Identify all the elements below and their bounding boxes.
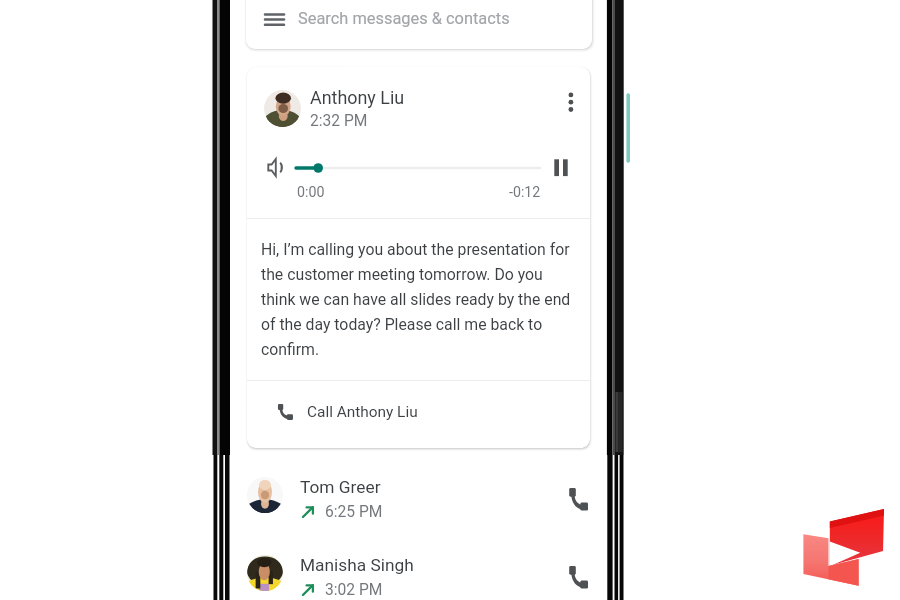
staticText: Hi, I’m calling you about the presentati… — [261, 240, 571, 359]
staticText: Search messages & contacts — [298, 9, 510, 28]
staticText: Anthony Liu — [310, 87, 405, 108]
staticText: Call Anthony Liu — [307, 403, 418, 421]
button[interactable]: Volume — [268, 158, 283, 177]
button[interactable] — [230, 541, 607, 600]
button[interactable]: Seek bar — [290, 158, 546, 178]
button[interactable]: Pause — [552, 157, 570, 175]
button[interactable] — [230, 463, 607, 541]
button[interactable] — [246, 0, 592, 49]
button[interactable]: Call Tom Greer — [562, 484, 594, 516]
staticText: 3:02 PM — [325, 581, 383, 599]
staticText: -0:12 — [509, 184, 541, 201]
staticText: 6:25 PM — [325, 503, 383, 521]
button[interactable]: More options — [558, 90, 582, 114]
staticText: Tom Greer — [300, 477, 381, 497]
button[interactable]: Call Anthony Liu — [277, 381, 590, 443]
other: Menu — [265, 13, 284, 26]
staticText: Manisha Singh — [300, 555, 414, 575]
staticText: 0:00 — [297, 184, 325, 201]
button[interactable]: Call Manisha Singh — [562, 562, 594, 594]
staticText: 2:32 PM — [310, 112, 368, 130]
